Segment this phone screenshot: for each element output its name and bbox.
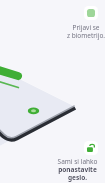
staticText: ponastavite geslo. [53, 165, 102, 182]
staticText: Prijavi se z biometrijo. [62, 23, 105, 40]
staticText: Sami si lahko [53, 157, 102, 166]
button[interactable]: Ponastavite geslo [84, 141, 98, 155]
button[interactable]: Prijavi se z biometrijo [84, 6, 98, 20]
